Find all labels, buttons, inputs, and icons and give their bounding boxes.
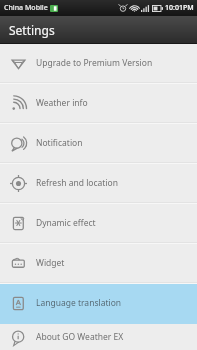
staticText: 10:01PM [165,3,194,13]
staticText: About GO Weather EX [36,331,124,343]
staticText: Notification [36,137,83,149]
button[interactable]: Widget [0,244,197,282]
staticText: Refresh and location [36,177,118,189]
button[interactable]: Language translation [0,284,197,322]
button[interactable]: Dynamic effect [0,204,197,242]
staticText: Settings [9,22,55,38]
button[interactable]: Upgrade to Premium Version [0,44,197,82]
staticText: Dynamic effect [36,217,96,229]
button[interactable]: About GO Weather EX [0,324,197,350]
staticText: China Mobile [4,3,48,13]
button[interactable]: Weather info [0,84,197,122]
staticText: Widget [36,257,65,269]
staticText: Upgrade to Premium Version [36,57,153,69]
staticText: Language translation [36,297,122,309]
button[interactable]: Refresh and location [0,164,197,202]
button[interactable]: Notification [0,124,197,162]
staticText: Weather info [36,97,88,109]
